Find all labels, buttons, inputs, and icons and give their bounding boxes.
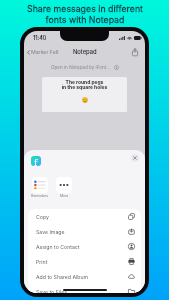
button[interactable]: More xyxy=(56,177,72,198)
staticText: More xyxy=(60,194,69,198)
staticText: f xyxy=(34,156,38,166)
button[interactable]: Copy xyxy=(28,209,141,224)
button[interactable]: Save Image xyxy=(28,224,141,239)
staticText: Print xyxy=(36,259,48,265)
staticText: Reminders xyxy=(31,194,49,198)
staticText: The round pegs in the square holes xyxy=(42,79,127,91)
button[interactable]: Print xyxy=(28,254,141,269)
button[interactable]: Assign to Contact xyxy=(28,239,141,254)
button[interactable]: Open in Notepad by iFont... xyxy=(24,62,145,73)
staticText: Assign to Contact xyxy=(36,244,80,250)
button[interactable]: Marker Felt xyxy=(25,46,61,58)
button[interactable]: Reminders xyxy=(31,177,49,198)
button[interactable]: iFont app icon xyxy=(31,156,41,166)
staticText: Add to Shared Album xyxy=(36,274,89,280)
staticText: Notepad xyxy=(73,48,97,55)
staticText: Open in Notepad by iFont... xyxy=(51,65,111,71)
button[interactable]: Add to Shared Album xyxy=(28,269,141,284)
staticText: Marker Felt xyxy=(31,49,59,55)
staticText: 11:40 xyxy=(33,35,47,42)
staticText: Save Image xyxy=(36,229,65,235)
staticText: Copy xyxy=(36,214,49,220)
button[interactable]: Share xyxy=(128,46,142,58)
staticText: Share messages in different fonts with N… xyxy=(27,3,143,25)
button[interactable]: Close xyxy=(131,154,139,162)
staticText: Save to Files xyxy=(36,289,68,293)
button[interactable]: Save to Files xyxy=(28,284,141,293)
